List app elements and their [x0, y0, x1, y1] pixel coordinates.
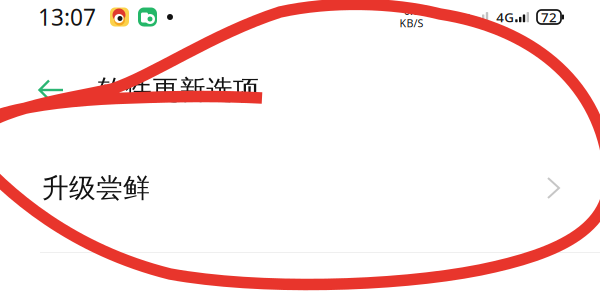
staticText: × [461, 6, 470, 28]
staticText: 4G [496, 8, 514, 26]
staticText: 软件更新选项 [98, 74, 260, 106]
staticText: 升级尝鲜 [42, 172, 150, 204]
staticText: 0.0 [404, 4, 419, 18]
staticText: 13:07 [38, 2, 96, 32]
button[interactable]: Back [38, 68, 64, 112]
staticText: 72 [541, 8, 557, 26]
staticText: KB/S [399, 16, 423, 30]
button[interactable]: 升级尝鲜 [0, 112, 600, 253]
